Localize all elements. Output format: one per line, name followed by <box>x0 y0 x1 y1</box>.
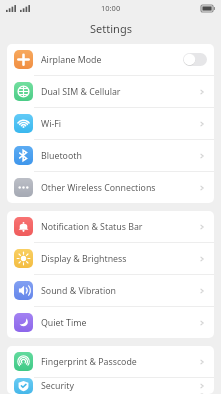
staticText: Other Wireless Connections <box>41 182 156 194</box>
staticText: Display & Brightness <box>41 253 127 265</box>
button[interactable]: Wi-Fi <box>7 108 214 139</box>
button[interactable]: Notification & Status Bar <box>7 211 214 242</box>
button[interactable]: Dual SIM & Cellular <box>7 76 214 107</box>
staticText: Fingerprint & Passcode <box>41 356 137 368</box>
button[interactable]: Airplane Mode toggle <box>183 53 207 66</box>
button[interactable]: Sound & Vibration <box>7 275 214 306</box>
staticText: Notification & Status Bar <box>41 221 143 233</box>
staticText: 10:00 <box>101 3 121 13</box>
button[interactable]: Security <box>7 378 214 394</box>
staticText: Dual SIM & Cellular <box>41 86 121 98</box>
staticText: Security <box>41 380 75 392</box>
staticText: Settings <box>90 21 132 36</box>
staticText: Airplane Mode <box>41 54 102 66</box>
staticText: Sound & Vibration <box>41 285 117 297</box>
button[interactable]: Airplane Mode <box>7 44 214 75</box>
button[interactable]: Other Wireless Connections <box>7 172 214 203</box>
staticText: Bluetooth <box>41 150 82 162</box>
staticText: Wi-Fi <box>41 118 62 130</box>
button[interactable]: Quiet Time <box>7 307 214 338</box>
button[interactable]: Fingerprint & Passcode <box>7 346 214 377</box>
button[interactable]: Bluetooth <box>7 140 214 171</box>
staticText: Quiet Time <box>41 317 87 329</box>
button[interactable]: Display & Brightness <box>7 243 214 274</box>
